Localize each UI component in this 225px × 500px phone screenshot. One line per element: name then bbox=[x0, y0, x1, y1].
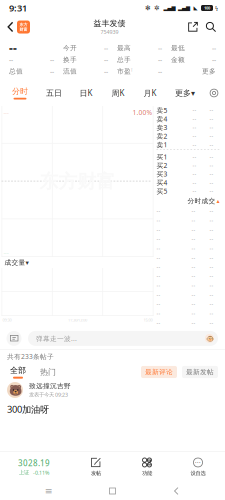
staticText: 买4 bbox=[156, 178, 167, 187]
staticText: 总手 bbox=[117, 56, 131, 64]
staticText: 换手 bbox=[63, 56, 77, 64]
staticText: 周K bbox=[111, 88, 124, 98]
staticText: 分时 bbox=[12, 86, 28, 96]
button[interactable]: 分时 bbox=[6, 80, 34, 106]
staticText: 发表于今天 09:23 bbox=[29, 391, 68, 398]
staticText: -- bbox=[191, 235, 195, 243]
staticText: ▲ bbox=[216, 199, 219, 203]
staticText: -- bbox=[209, 208, 213, 215]
staticText: 东方 bbox=[19, 22, 27, 27]
staticText: -- bbox=[209, 153, 213, 160]
staticText: -- bbox=[191, 208, 195, 215]
button[interactable]: 五日 bbox=[42, 80, 66, 106]
staticText: -- bbox=[158, 44, 162, 52]
button[interactable]: 全部 bbox=[7, 363, 29, 380]
staticText: -- bbox=[212, 44, 216, 52]
staticText: ✲ bbox=[154, 4, 160, 12]
staticText: 热门 bbox=[40, 367, 56, 377]
staticText: 总值 bbox=[9, 67, 23, 75]
button[interactable]: 成交量▾ bbox=[4, 258, 28, 267]
button[interactable]: 热门 bbox=[37, 363, 59, 380]
staticText: 3028.19 bbox=[18, 458, 50, 468]
staticText: 弹幕走一波... bbox=[36, 334, 77, 343]
staticText: -- bbox=[209, 141, 213, 148]
button[interactable]: Share bbox=[184, 16, 202, 38]
staticText: 1.00% bbox=[132, 108, 152, 117]
button[interactable]: 3028.19 bbox=[6, 452, 62, 482]
button[interactable]: 月K bbox=[138, 80, 162, 106]
staticText: -- bbox=[192, 133, 196, 140]
staticText: -- bbox=[192, 179, 196, 186]
staticText: 更多 bbox=[202, 67, 216, 75]
button[interactable]: Settings bbox=[208, 80, 220, 106]
staticText: -- bbox=[156, 273, 160, 280]
staticText: -- bbox=[9, 40, 17, 56]
button[interactable]: Home bbox=[97, 482, 127, 500]
staticText: 全部 bbox=[10, 365, 26, 375]
staticText: 买5 bbox=[156, 187, 167, 196]
button[interactable]: Recents bbox=[34, 482, 64, 500]
staticText: -- bbox=[192, 115, 196, 122]
staticText: -- bbox=[191, 217, 195, 224]
button[interactable]: 最新评论 bbox=[141, 366, 177, 378]
staticText: --.-- bbox=[3, 110, 8, 115]
staticText: -- bbox=[191, 282, 195, 289]
staticText: -- bbox=[50, 55, 54, 64]
staticText: -- bbox=[192, 153, 196, 160]
staticText: 15:00 bbox=[143, 317, 152, 323]
button[interactable]: 🐻 bbox=[0, 381, 225, 421]
staticText: 上证 bbox=[19, 469, 29, 476]
staticText: -- bbox=[212, 55, 216, 64]
staticText: 最高 bbox=[117, 44, 131, 52]
button[interactable]: 弹幕走一波... bbox=[28, 331, 218, 346]
staticText: ϟ bbox=[215, 4, 218, 12]
button[interactable]: 更多▾ bbox=[170, 80, 200, 106]
button[interactable]: Search bbox=[202, 16, 220, 38]
staticText: 成交量▾ bbox=[4, 258, 28, 267]
staticText: 功能 bbox=[142, 470, 152, 477]
staticText: 卖3 bbox=[156, 123, 167, 132]
staticText: 卖5 bbox=[156, 106, 167, 115]
button[interactable]: 周K bbox=[106, 80, 130, 106]
staticText: -- bbox=[209, 310, 213, 317]
staticText: ••• bbox=[195, 460, 201, 465]
button[interactable]: Back bbox=[2, 16, 35, 38]
staticText: -- bbox=[209, 245, 213, 252]
staticText: -- bbox=[191, 245, 195, 252]
staticText: -- bbox=[209, 124, 213, 131]
staticText: 流值 bbox=[63, 67, 77, 75]
staticText: -- bbox=[209, 235, 213, 243]
staticText: -- bbox=[156, 301, 160, 308]
button[interactable]: Back bbox=[161, 482, 191, 500]
button[interactable]: 功能 bbox=[130, 452, 164, 482]
staticText: -- bbox=[209, 254, 213, 261]
staticText: --.-- bbox=[3, 250, 8, 255]
staticText: -- bbox=[209, 179, 213, 186]
button[interactable]: 更多 bbox=[171, 66, 216, 77]
staticText: 东方财富 bbox=[39, 170, 115, 193]
staticText: -- bbox=[156, 235, 160, 243]
button[interactable]: 分时成交 bbox=[156, 195, 219, 206]
staticText: ▂▄▆ bbox=[178, 5, 190, 11]
button[interactable]: Toggle danmaku bbox=[6, 330, 22, 346]
staticText: 最新发帖 bbox=[186, 368, 214, 376]
button[interactable]: ••• bbox=[181, 452, 215, 482]
staticText: 🐻 bbox=[8, 384, 21, 396]
button[interactable]: 日K bbox=[74, 80, 98, 106]
staticText: 设自选 bbox=[190, 470, 205, 477]
staticText: -- bbox=[156, 226, 160, 233]
staticText: 日K bbox=[79, 88, 92, 98]
staticText: -- bbox=[156, 310, 160, 317]
button[interactable]: 最新发帖 bbox=[182, 366, 218, 378]
staticText: -- bbox=[156, 245, 160, 252]
staticText: 市盈 bbox=[117, 67, 131, 75]
staticText: -- bbox=[192, 162, 196, 169]
staticText: -- bbox=[209, 273, 213, 280]
staticText: -- bbox=[156, 282, 160, 289]
staticText: -- bbox=[156, 208, 160, 215]
staticText: -- bbox=[104, 44, 108, 52]
staticText: -- bbox=[209, 107, 213, 114]
staticText: -- bbox=[209, 263, 213, 270]
button[interactable]: 发帖 bbox=[79, 452, 113, 482]
staticText: -- bbox=[156, 319, 160, 326]
